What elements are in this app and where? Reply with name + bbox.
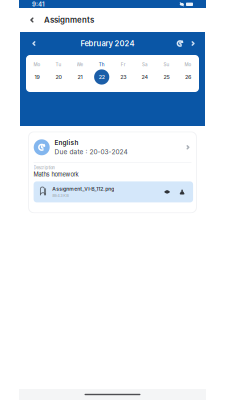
staticText: Assignment_VI-B_112.png xyxy=(52,186,114,192)
staticText: Su xyxy=(163,62,169,67)
staticText: Th xyxy=(99,62,105,67)
staticText: 9:41 xyxy=(32,1,45,8)
staticText: 25 xyxy=(163,74,169,80)
staticText: 20 xyxy=(55,74,61,80)
button[interactable]: Next week xyxy=(186,36,200,50)
button[interactable]: Mo xyxy=(177,55,199,92)
button[interactable]: Sa xyxy=(134,55,156,92)
staticText: February 2024 xyxy=(80,39,134,48)
staticText: Description xyxy=(34,165,55,170)
staticText: Tu xyxy=(55,62,61,67)
button[interactable]: English xyxy=(29,132,196,162)
button[interactable]: Mo xyxy=(26,55,48,92)
button[interactable]: Preview attachment xyxy=(161,185,174,198)
button[interactable]: Download attachment xyxy=(176,185,189,198)
staticText: 21 xyxy=(78,74,83,80)
staticText: 23 xyxy=(120,74,126,80)
staticText: 24 xyxy=(141,74,148,80)
staticText: Fr xyxy=(121,62,126,67)
button[interactable]: Fr xyxy=(112,55,134,92)
staticText: Maths homework xyxy=(34,171,79,178)
button[interactable]: Su xyxy=(156,55,177,92)
staticText: 26 xyxy=(185,74,191,80)
staticText: 89.43 KB xyxy=(52,193,69,198)
button[interactable]: Th xyxy=(91,55,112,92)
staticText: 22 xyxy=(99,74,105,80)
staticText: Sa xyxy=(142,62,148,67)
staticText: Mo xyxy=(185,62,192,67)
staticText: 19 xyxy=(34,74,39,80)
button[interactable]: History xyxy=(174,37,186,49)
staticText: We xyxy=(77,62,84,67)
staticText: Mo xyxy=(33,62,40,67)
staticText: Due date : 20-03-2024 xyxy=(54,148,127,156)
button[interactable]: We xyxy=(69,55,91,92)
button[interactable]: Tu xyxy=(48,55,69,92)
button[interactable]: Previous week xyxy=(27,36,41,50)
staticText: Assignments xyxy=(44,15,94,25)
staticText: English xyxy=(54,139,78,146)
button[interactable]: Back xyxy=(20,8,44,32)
